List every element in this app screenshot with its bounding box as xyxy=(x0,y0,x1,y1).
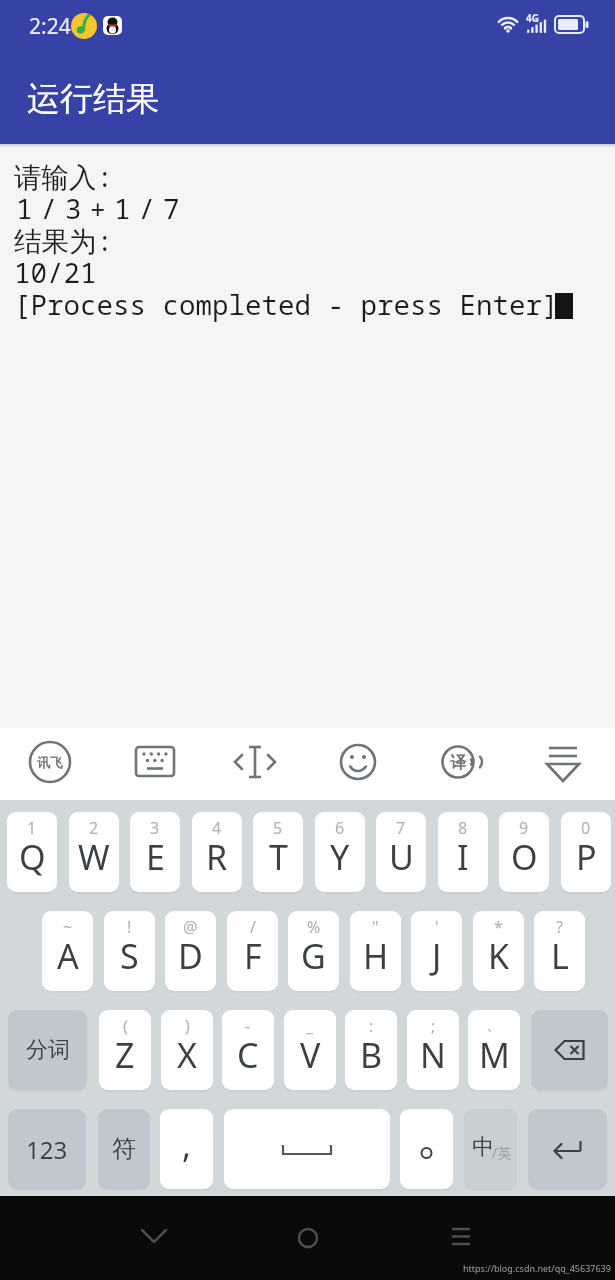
button[interactable] xyxy=(205,1196,410,1280)
button[interactable] xyxy=(409,728,512,800)
staticText: ; xyxy=(431,1015,436,1037)
button[interactable]: 6 xyxy=(315,812,365,892)
staticText: 请输入: xyxy=(14,158,113,196)
staticText: F xyxy=(244,933,262,979)
staticText: 4 xyxy=(212,817,222,839)
button[interactable] xyxy=(512,728,615,800)
staticText: 、 xyxy=(486,1015,502,1035)
staticText: / xyxy=(250,916,256,938)
staticText: 2 xyxy=(89,817,99,839)
button[interactable] xyxy=(102,728,204,800)
staticText: D xyxy=(178,933,203,979)
button[interactable] xyxy=(306,728,409,800)
staticText: : xyxy=(369,1015,374,1037)
staticText: ) xyxy=(185,1015,190,1037)
staticText: * xyxy=(494,916,503,938)
button[interactable]: ~ xyxy=(42,911,93,991)
button[interactable]: 8 xyxy=(438,812,488,892)
button[interactable]: 中 xyxy=(464,1109,517,1189)
staticText: Q xyxy=(19,834,46,880)
staticText: V xyxy=(300,1032,321,1078)
staticText: 123 xyxy=(26,1133,68,1166)
staticText: [Process completed - press Enter] xyxy=(14,286,559,323)
staticText: C xyxy=(237,1032,259,1078)
staticText: 译 xyxy=(450,753,466,773)
staticText: L xyxy=(551,933,569,979)
button[interactable]: 9 xyxy=(499,812,549,892)
button[interactable]: 4 xyxy=(192,812,242,892)
staticText: % xyxy=(307,916,321,938)
staticText: A xyxy=(57,933,79,979)
button[interactable]: ! xyxy=(104,911,155,991)
button[interactable] xyxy=(224,1109,390,1189)
staticText: 分词 xyxy=(26,1036,70,1064)
button[interactable] xyxy=(204,728,306,800)
button[interactable]: 符 xyxy=(98,1109,150,1189)
button[interactable]: 7 xyxy=(376,812,426,892)
staticText: - xyxy=(245,1015,251,1037)
button[interactable]: / xyxy=(227,911,278,991)
staticText: O xyxy=(511,834,538,880)
staticText: 4G xyxy=(526,11,539,25)
button[interactable]: 123 xyxy=(8,1109,86,1189)
staticText: M xyxy=(479,1032,510,1078)
staticText: 10/21 xyxy=(14,254,97,291)
button[interactable]: ; xyxy=(407,1010,459,1090)
button[interactable]: ) xyxy=(161,1010,213,1090)
button[interactable]: 2 xyxy=(69,812,119,892)
button[interactable]: 0 xyxy=(561,812,611,892)
staticText: 中 xyxy=(472,1133,494,1161)
staticText: 结果为: xyxy=(14,222,113,260)
staticText: 5 xyxy=(273,817,283,839)
staticText: J xyxy=(432,933,442,979)
staticText: 2:24 xyxy=(29,12,71,41)
staticText: 讯飞 xyxy=(37,754,63,770)
staticText: X xyxy=(177,1032,197,1078)
button[interactable]: ? xyxy=(534,911,585,991)
button[interactable]: @ xyxy=(165,911,216,991)
button[interactable]: 分词 xyxy=(8,1010,87,1090)
staticText: 9 xyxy=(519,817,529,839)
staticText: W xyxy=(78,834,110,880)
staticText: Z xyxy=(115,1032,135,1078)
staticText: 7 xyxy=(396,817,406,839)
button[interactable]: ( xyxy=(99,1010,151,1090)
staticText: _ xyxy=(306,1015,314,1037)
staticText: Y xyxy=(330,834,350,880)
button[interactable]: 、 xyxy=(468,1010,520,1090)
staticText: S xyxy=(120,933,139,979)
button[interactable]: " xyxy=(350,911,401,991)
button[interactable]: 5 xyxy=(253,812,303,892)
button[interactable]: - xyxy=(222,1010,274,1090)
button[interactable]: 1 xyxy=(7,812,57,892)
button[interactable]: 3 xyxy=(130,812,180,892)
button[interactable]: _ xyxy=(284,1010,336,1090)
staticText: T xyxy=(269,834,288,880)
staticText: U xyxy=(389,834,414,880)
staticText: 1 xyxy=(27,817,37,839)
staticText: ( xyxy=(123,1015,128,1037)
staticText: 3 xyxy=(150,817,160,839)
staticText: @ xyxy=(183,916,198,938)
button[interactable]: % xyxy=(288,911,339,991)
button[interactable] xyxy=(400,1109,453,1189)
staticText: ! xyxy=(127,916,132,938)
staticText: B xyxy=(360,1032,383,1078)
staticText: 0 xyxy=(581,817,591,839)
staticText: P xyxy=(576,834,597,880)
button[interactable]: * xyxy=(473,911,524,991)
staticText: , xyxy=(182,1122,192,1168)
button[interactable] xyxy=(531,1010,608,1090)
button[interactable]: , xyxy=(160,1109,213,1189)
staticText: R xyxy=(206,834,228,880)
staticText: https://blog.csdn.net/qq_45637639 xyxy=(463,1262,611,1274)
button[interactable]: ' xyxy=(411,911,462,991)
button[interactable]: : xyxy=(345,1010,397,1090)
button[interactable] xyxy=(528,1109,607,1189)
button[interactable] xyxy=(0,1196,205,1280)
button[interactable] xyxy=(0,728,102,800)
staticText: /英 xyxy=(492,1143,512,1162)
staticText: G xyxy=(301,933,326,979)
button[interactable] xyxy=(410,1196,615,1280)
staticText: 8 xyxy=(458,817,468,839)
